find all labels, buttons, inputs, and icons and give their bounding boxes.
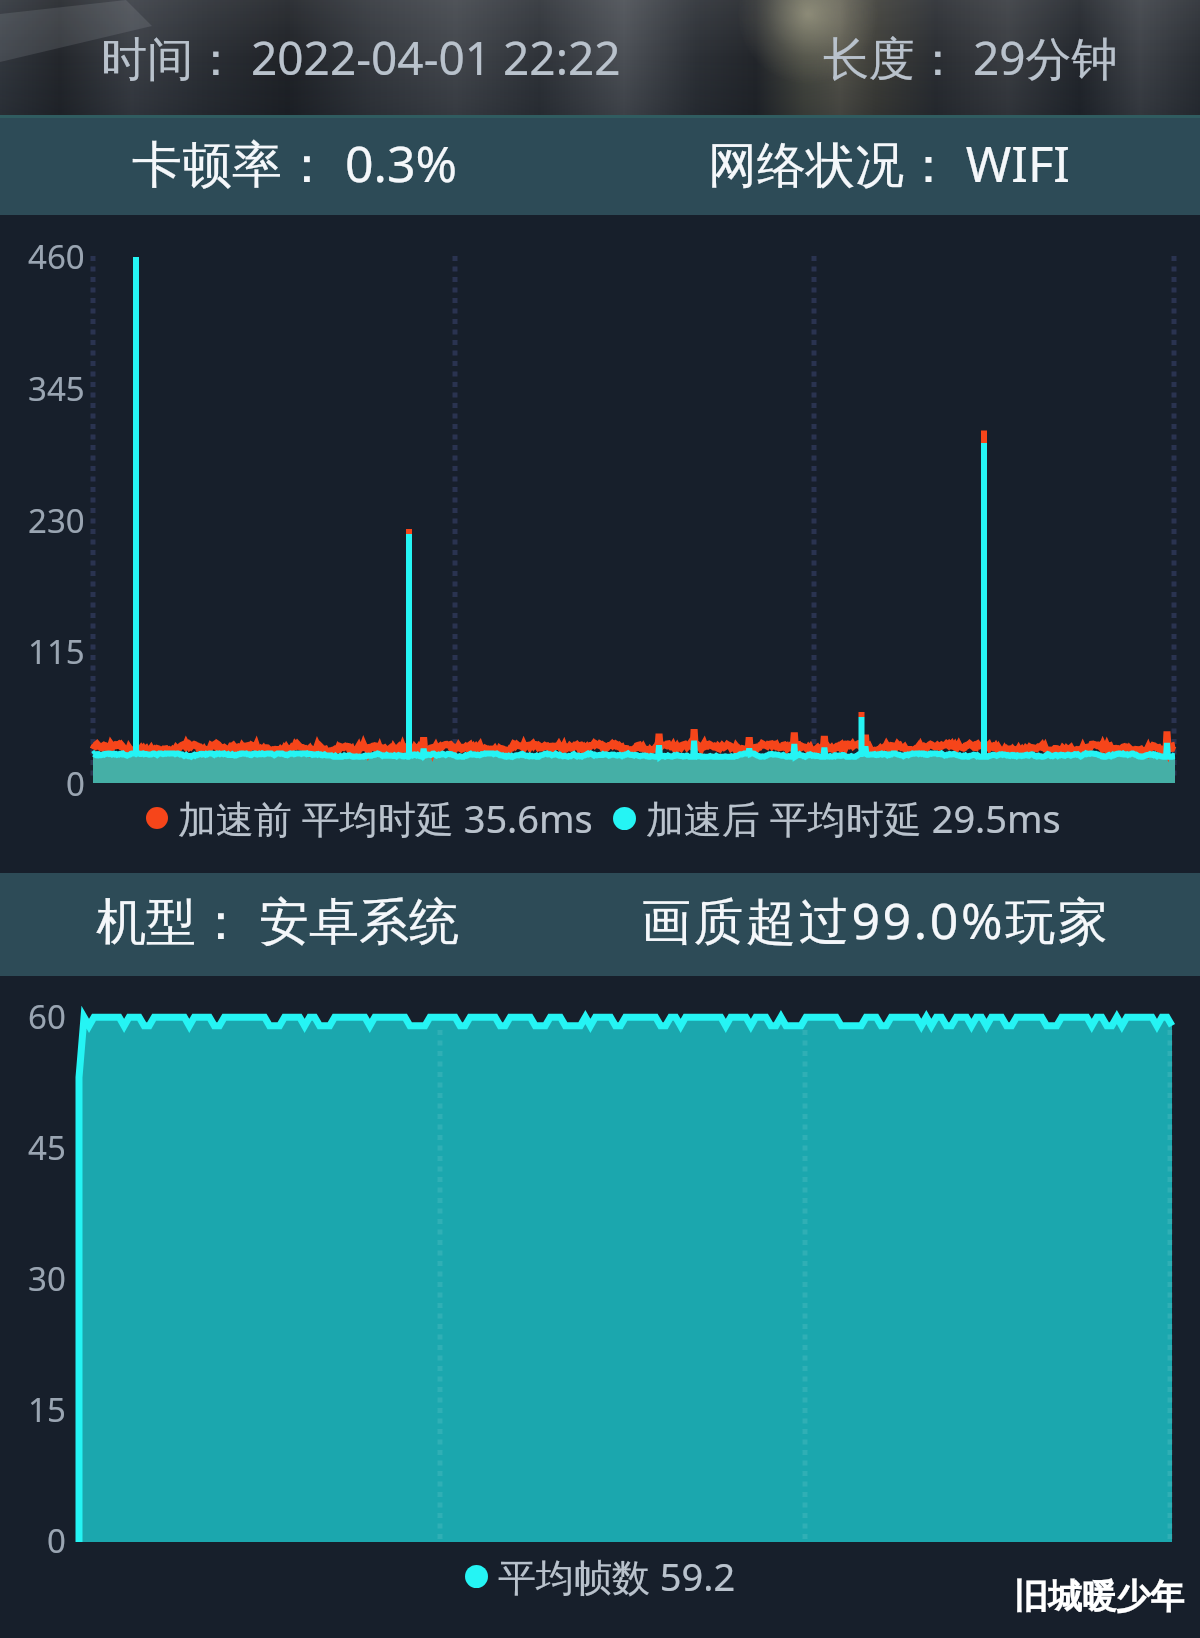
staticText: 旧城暖少年 (1014, 1575, 1184, 1618)
button[interactable]: 机型： 安卓系统 (0, 873, 1200, 976)
staticText: 30 (28, 1256, 66, 1301)
staticText: 60 (28, 994, 66, 1039)
staticText: 画质超过99.0%玩家 (641, 886, 1111, 954)
staticText: 时间： 2022-04-01 22:22 (101, 26, 621, 89)
staticText: 345 (28, 366, 85, 411)
staticText: 230 (28, 498, 85, 543)
staticText: 0 (47, 1518, 66, 1563)
staticText: 加速前 平均时延 35.6ms (168, 792, 613, 844)
staticText: 网络状况： WIFI (708, 130, 1070, 197)
button[interactable]: 加速前 平均时延 35.6ms (146, 792, 1061, 844)
button[interactable]: 平均帧数 59.2 (465, 1550, 736, 1602)
staticText: 115 (28, 629, 85, 674)
staticText: 0 (66, 761, 85, 806)
staticText: 平均帧数 59.2 (488, 1550, 736, 1602)
staticText: 长度： 29分钟 (823, 26, 1118, 89)
staticText: 45 (28, 1125, 66, 1170)
staticText: 卡顿率： 0.3% (132, 129, 458, 197)
staticText: 460 (28, 234, 85, 279)
staticText: 加速后 平均时延 29.5ms (636, 792, 1061, 844)
staticText: 15 (28, 1387, 66, 1432)
button[interactable]: 卡顿率： 0.3% (0, 115, 1200, 215)
staticText: 机型： 安卓系统 (96, 886, 459, 954)
